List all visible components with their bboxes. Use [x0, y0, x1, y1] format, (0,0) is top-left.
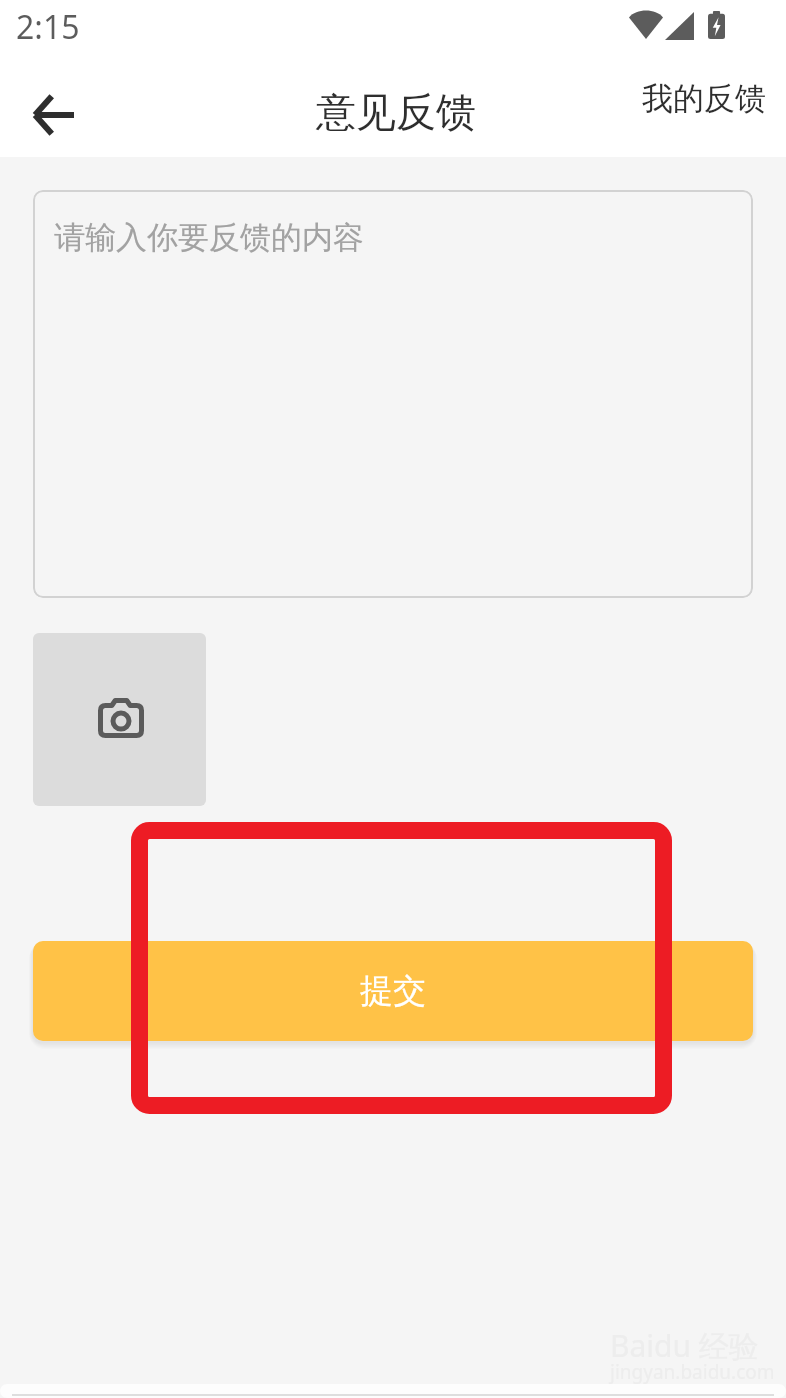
- staticText: 意见反馈: [316, 87, 476, 137]
- button[interactable]: 请输入你要反馈的内容: [33, 190, 753, 598]
- staticText: 2:15: [16, 5, 80, 49]
- staticText: 请输入你要反馈的内容: [54, 218, 364, 257]
- button[interactable]: 提交: [33, 941, 753, 1041]
- staticText: 我的反馈: [642, 79, 766, 118]
- button[interactable]: Back: [0, 62, 105, 157]
- staticText: Baidu 经验: [610, 1325, 759, 1366]
- staticText: 提交: [360, 970, 426, 1012]
- staticText: jingyan.baidu.com: [610, 1359, 775, 1385]
- button[interactable]: Add photo: [33, 633, 206, 806]
- button[interactable]: 我的反馈: [620, 62, 786, 157]
